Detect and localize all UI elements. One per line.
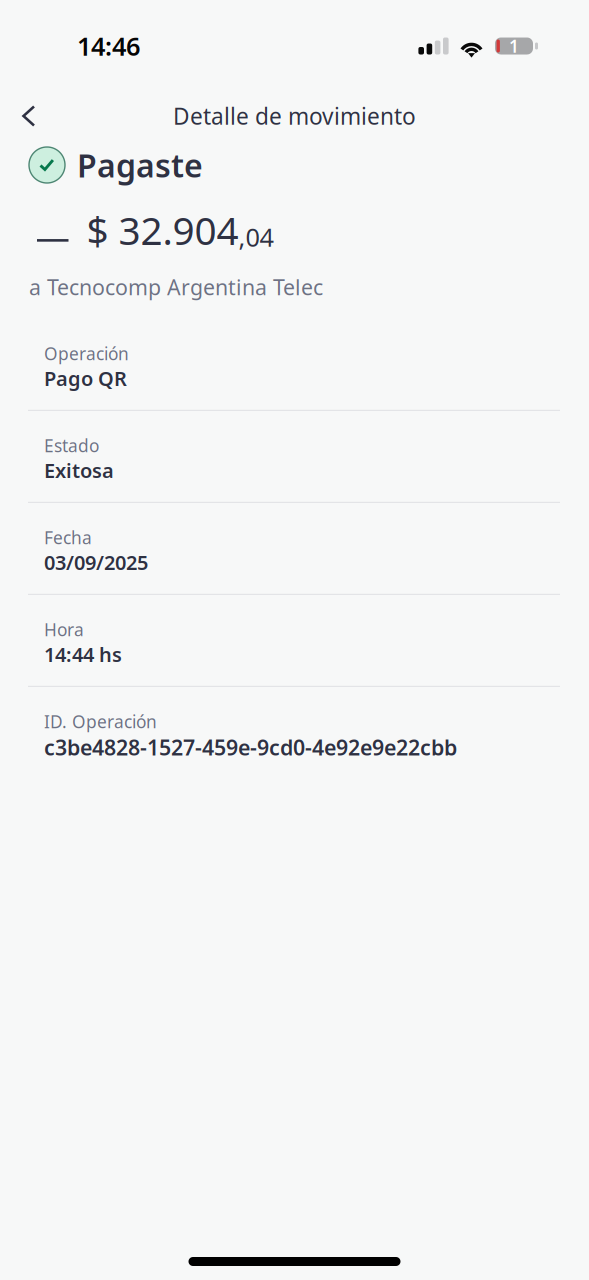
- staticText: ,04: [238, 220, 273, 254]
- staticText: Hora: [44, 618, 84, 641]
- staticText: $ 32.904: [86, 204, 238, 256]
- staticText: 1: [509, 34, 519, 57]
- staticText: 14:46: [77, 29, 140, 63]
- staticText: Detalle de movimiento: [173, 101, 416, 131]
- staticText: Fecha: [44, 526, 92, 549]
- staticText: ID. Operación: [44, 710, 157, 733]
- staticText: Pagaste: [77, 144, 203, 186]
- staticText: a Tecnocomp Argentina Telec: [29, 273, 323, 301]
- staticText: 14:44 hs: [44, 641, 122, 668]
- staticText: Exitosa: [44, 457, 114, 484]
- staticText: Pago QR: [44, 365, 127, 392]
- staticText: c3be4828-1527-459e-9cd0-4e92e9e22cbb: [44, 733, 457, 761]
- button[interactable]: Volver: [0, 94, 53, 137]
- staticText: 03/09/2025: [44, 549, 148, 576]
- staticText: Operación: [44, 342, 129, 365]
- staticText: Estado: [44, 434, 99, 457]
